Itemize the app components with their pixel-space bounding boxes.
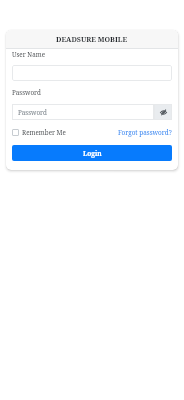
staticText: Login: [83, 149, 102, 158]
staticText: User Name: [12, 50, 45, 59]
button[interactable]: Remember Me: [12, 128, 66, 137]
staticText: Password: [18, 108, 47, 117]
button[interactable]: Login: [12, 145, 172, 161]
staticText: DEADSURE MOBILE: [56, 34, 128, 44]
button[interactable]: Password: [12, 104, 154, 120]
staticText: Password: [12, 88, 41, 97]
button[interactable]: Forgot password?: [118, 128, 172, 137]
staticText: Remember Me: [22, 128, 66, 137]
button[interactable]: Show password: [154, 104, 172, 120]
button[interactable]: [12, 65, 172, 81]
